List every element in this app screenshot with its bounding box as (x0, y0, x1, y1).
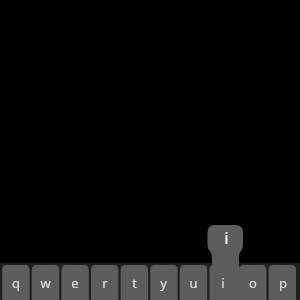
button[interactable]: i (209, 265, 236, 300)
staticText: r (102, 274, 108, 292)
staticText: q (12, 274, 20, 292)
staticText: i (221, 274, 225, 292)
button[interactable]: w (32, 265, 59, 300)
staticText: e (71, 274, 79, 292)
button[interactable]: t (121, 265, 148, 300)
staticText: t (132, 274, 137, 292)
staticText: p (279, 274, 287, 292)
button[interactable]: o (239, 265, 266, 300)
button[interactable]: y (150, 265, 177, 300)
staticText: i (224, 226, 229, 249)
staticText: o (249, 274, 257, 292)
button[interactable]: p (269, 265, 296, 300)
staticText: w (40, 274, 51, 292)
button[interactable]: r (91, 265, 118, 300)
button[interactable]: q (2, 265, 29, 300)
other: Key preview i (208, 225, 244, 252)
button[interactable]: u (180, 265, 207, 300)
staticText: u (189, 274, 198, 292)
button[interactable]: e (61, 265, 88, 300)
staticText: y (160, 274, 167, 292)
